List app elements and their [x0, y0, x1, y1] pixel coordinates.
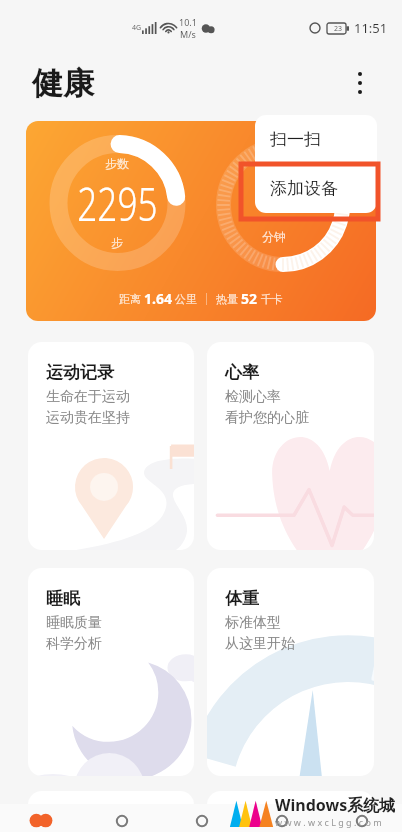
button[interactable]: 睡眠	[28, 568, 194, 776]
staticText: 距离	[119, 291, 144, 306]
staticText: 运动贵在坚持	[46, 409, 130, 427]
staticText: 公里	[172, 291, 197, 306]
button[interactable]: 运动记录	[28, 342, 194, 550]
button[interactable]: Me	[322, 804, 402, 832]
staticText: 健康	[32, 64, 94, 103]
staticText: 看护您的心脏	[225, 409, 309, 427]
staticText: 4G	[132, 23, 142, 33]
button[interactable]: Health	[0, 804, 81, 832]
button[interactable]: Devices	[242, 804, 322, 832]
button[interactable]: Discover	[162, 804, 242, 832]
button[interactable]: 体重	[207, 568, 374, 776]
staticText: 添加设备	[270, 178, 338, 199]
staticText: 睡眠	[46, 588, 80, 609]
staticText: Windows系统城	[275, 794, 396, 816]
staticText: 步	[111, 235, 123, 250]
staticText: 1.64	[144, 289, 172, 308]
button[interactable]: 添加设备	[255, 164, 377, 213]
staticText: 扫一扫	[270, 129, 321, 150]
staticText: 标准体型	[225, 614, 281, 632]
staticText: 23	[334, 24, 343, 34]
staticText: 52	[241, 289, 258, 308]
staticText: 生命在于运动	[46, 388, 130, 406]
staticText: 睡眠质量	[46, 614, 102, 632]
staticText: 心率	[225, 362, 259, 383]
staticText: 11:51	[354, 19, 388, 37]
staticText: 体重	[225, 588, 259, 609]
button[interactable]: 扫一扫	[255, 115, 377, 164]
staticText: w w w . w x c L g g . c o m	[275, 816, 382, 828]
staticText: 10.1	[179, 16, 197, 28]
button[interactable]: More options	[344, 67, 376, 99]
staticText: 分钟	[262, 229, 286, 244]
staticText: 千卡	[258, 291, 283, 306]
staticText: 从这里开始	[225, 635, 295, 653]
staticText: 科学分析	[46, 635, 102, 653]
staticText: 2295	[77, 173, 158, 234]
staticText: 运动记录	[46, 362, 114, 383]
button[interactable]: Exercise	[81, 804, 162, 832]
button[interactable]: 步数	[26, 121, 376, 321]
staticText: M/s	[180, 28, 196, 40]
button[interactable]: 心率	[207, 342, 374, 550]
staticText: 热量	[216, 291, 241, 306]
staticText: 步数	[105, 156, 129, 171]
staticText: 检测心率	[225, 388, 281, 406]
